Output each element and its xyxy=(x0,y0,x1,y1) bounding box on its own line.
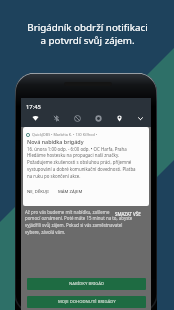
button[interactable]: NE, DĚKUJI xyxy=(25,187,51,197)
staticText: Brigádník obdrží notifikaci xyxy=(27,21,148,34)
button[interactable]: QuickJOBS • Markéta K. • 130 Kč/hod • xyxy=(23,127,149,206)
button[interactable]: Auto rotate xyxy=(88,112,109,125)
button[interactable]: Location xyxy=(109,112,130,125)
staticText: NE, DĚKUJI xyxy=(27,189,49,195)
staticText: Nová nabídka brigády xyxy=(27,138,84,145)
staticText: QuickJOBS • Markéta K. • 130 Kč/hod • xyxy=(32,132,98,137)
button[interactable]: NABÍDKY BRIGÁD xyxy=(27,278,146,290)
staticText: MÁM ZÁJEM xyxy=(58,189,83,195)
button[interactable]: MÁM ZÁJEM xyxy=(56,187,85,197)
staticText: 17:45 xyxy=(26,103,41,111)
button[interactable]: SMAZAT VŠE xyxy=(114,210,142,218)
button[interactable]: Wi-Fi xyxy=(25,112,46,125)
staticText: 16. února 1:00 odp. - 6:00 odp. • OC Har… xyxy=(27,146,136,179)
button[interactable]: Do not disturb xyxy=(67,112,88,125)
staticText: NABÍDKY BRIGÁD xyxy=(69,281,105,287)
staticText: MOJE DOHODNUTÉ BRIGÁDY xyxy=(58,299,116,305)
staticText: Až pro vás budeme mít nabídku, zašleme p… xyxy=(25,209,133,236)
button[interactable]: MOJE DOHODNUTÉ BRIGÁDY xyxy=(27,296,146,308)
button[interactable]: Bluetooth xyxy=(46,112,67,125)
staticText: SMAZAT VŠE xyxy=(115,211,141,217)
staticText: a potvrdí svůj zájem. xyxy=(40,34,135,47)
button[interactable]: Expand xyxy=(130,112,151,125)
